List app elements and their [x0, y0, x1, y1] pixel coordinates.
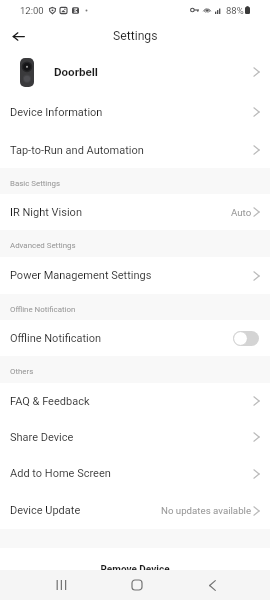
staticText: FAQ & Feedback [10, 395, 90, 408]
staticText: Offline Notification [10, 305, 76, 314]
staticText: 88% [226, 5, 244, 16]
staticText: Settings [113, 29, 158, 43]
button[interactable]: Offline Notification [0, 320, 270, 356]
staticText: IR Night Vision [10, 206, 82, 219]
staticText: Auto [231, 207, 252, 218]
staticText: Tap-to-Run and Automation [10, 144, 144, 157]
staticText: 12:00 [20, 5, 44, 16]
button[interactable]: Tap-to-Run and Automation [0, 132, 270, 168]
staticText: Doorbell [54, 65, 98, 79]
staticText: Device Information [10, 106, 103, 119]
button[interactable]: Back [6, 24, 30, 48]
button[interactable]: Recents [46, 570, 76, 600]
button[interactable]: Home [122, 570, 152, 600]
staticText: Basic Settings [10, 179, 61, 188]
button[interactable]: Device Update [0, 492, 270, 529]
button[interactable]: Doorbell [0, 52, 270, 92]
staticText: Offline Notification [10, 332, 102, 345]
button[interactable]: Offline Notification toggle [233, 331, 259, 346]
button[interactable]: Remove Device [0, 548, 270, 570]
staticText: Advanced Settings [10, 241, 76, 250]
staticText: Remove Device [100, 564, 170, 570]
staticText: Share Device [10, 431, 74, 444]
button[interactable]: Share Device [0, 419, 270, 455]
button[interactable]: Power Management Settings [0, 257, 270, 294]
staticText: Add to Home Screen [10, 467, 111, 480]
button[interactable]: Back [197, 570, 227, 600]
button[interactable]: FAQ & Feedback [0, 383, 270, 419]
button[interactable]: IR Night Vision [0, 194, 270, 230]
button[interactable]: Add to Home Screen [0, 455, 270, 492]
staticText: Power Management Settings [10, 269, 152, 282]
staticText: Device Update [10, 504, 81, 517]
staticText: Others [10, 367, 34, 376]
staticText: No updates available [161, 505, 252, 516]
button[interactable]: Device Information [0, 92, 270, 132]
